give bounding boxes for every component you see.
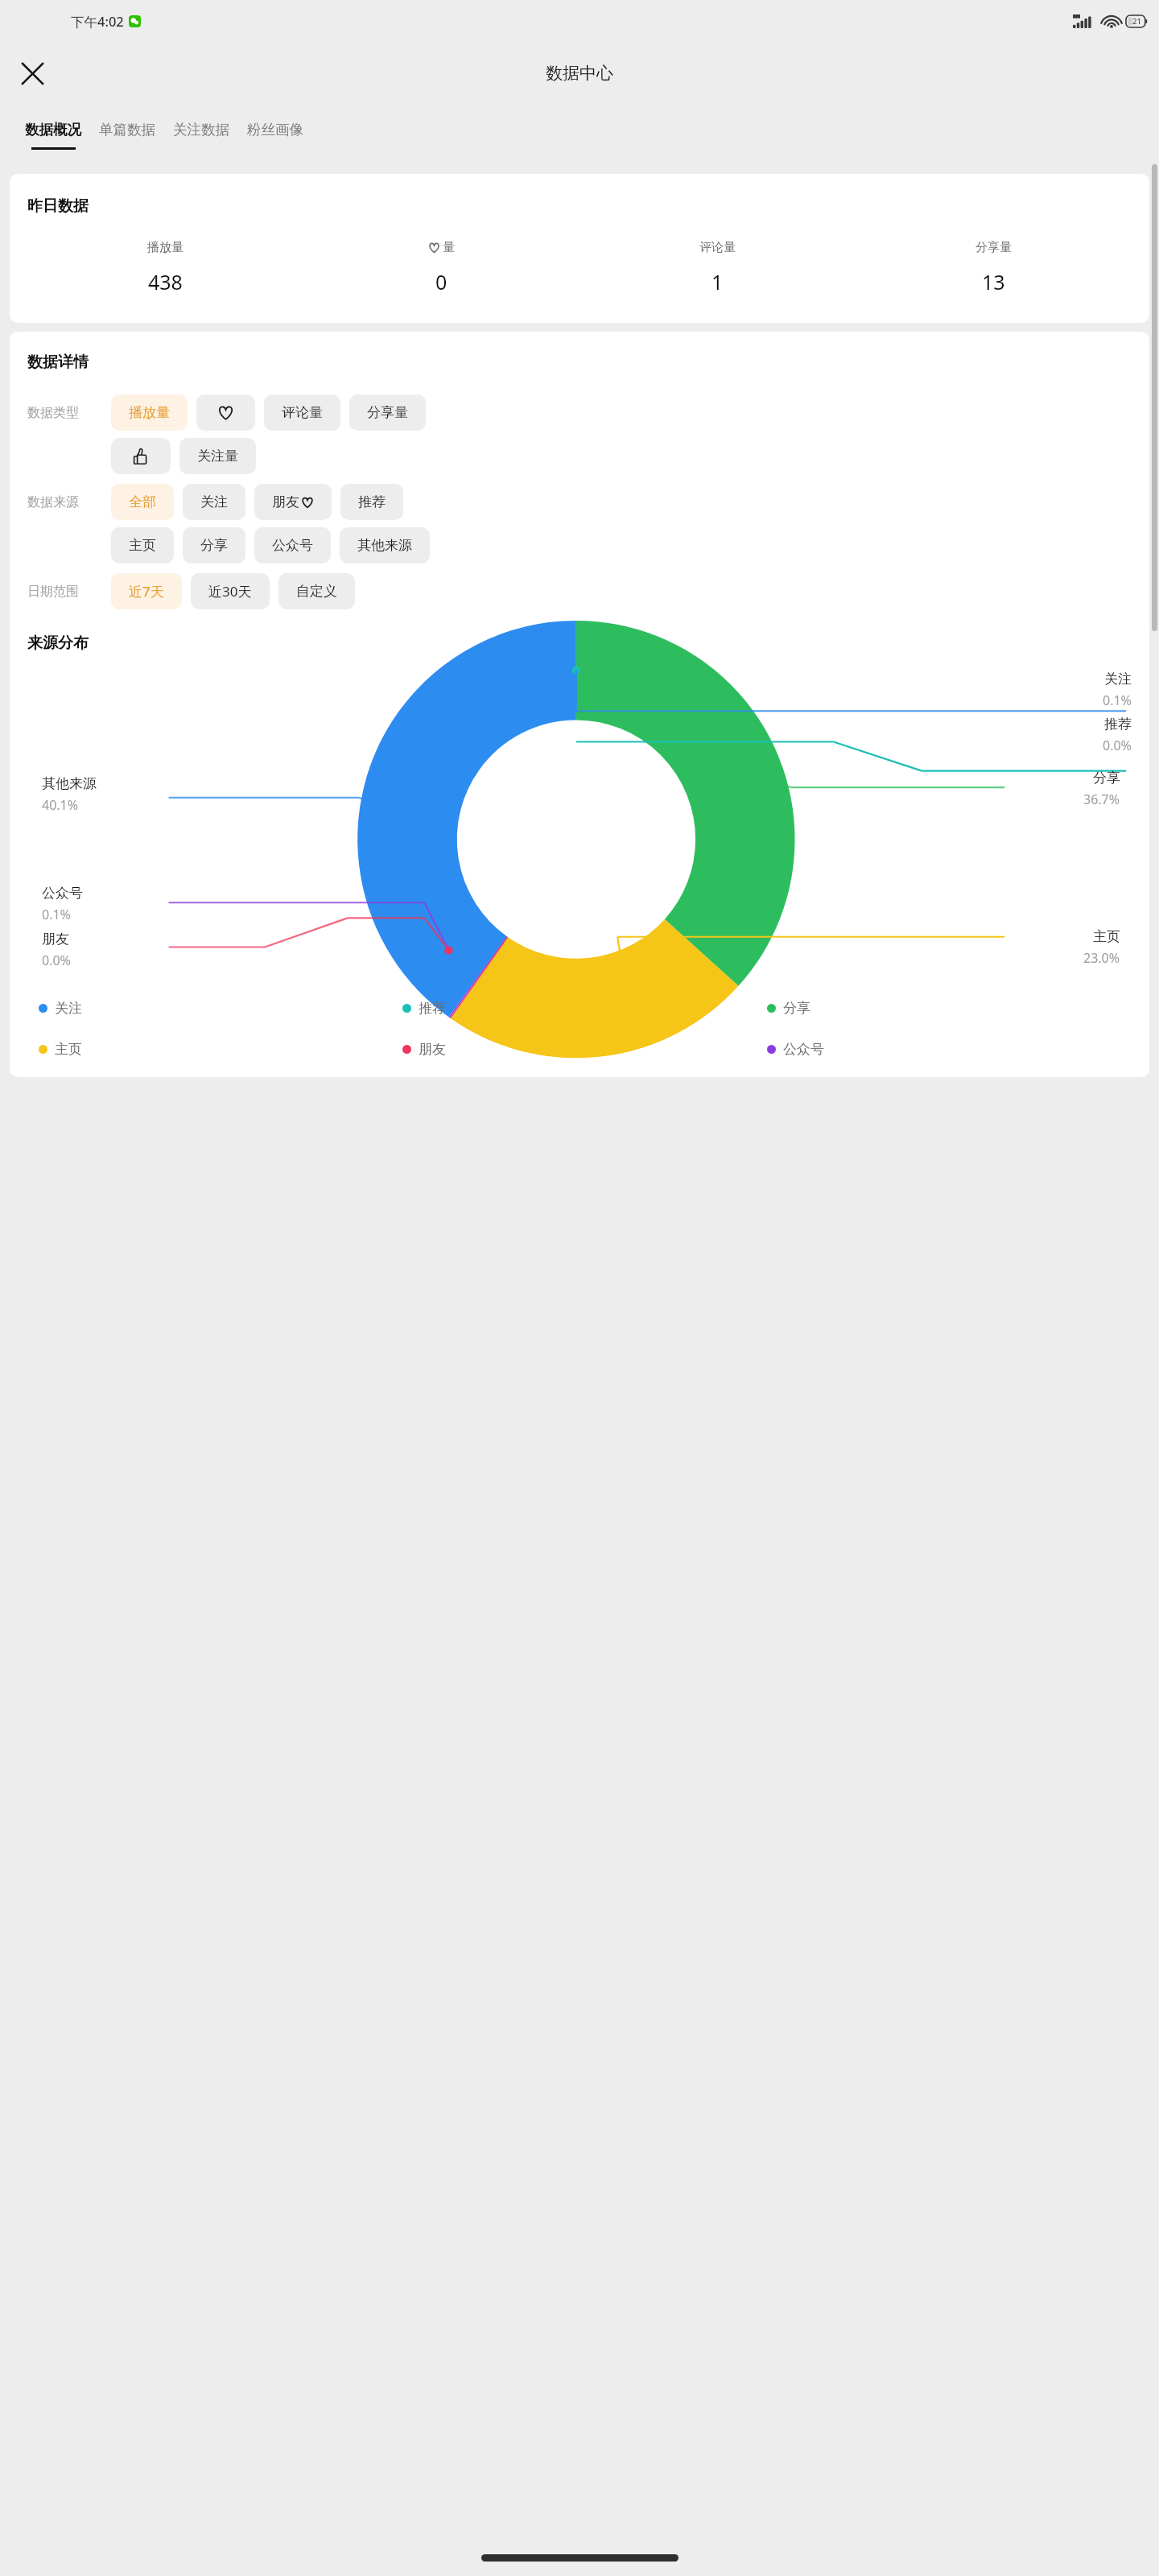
staticText: 近30天 bbox=[208, 582, 252, 601]
button[interactable]: 分享 bbox=[183, 527, 245, 563]
button[interactable] bbox=[196, 394, 255, 431]
staticText: 数据来源 bbox=[27, 494, 79, 510]
staticText: 分享 bbox=[783, 1000, 810, 1017]
staticText: 主页 bbox=[55, 1041, 82, 1058]
staticText: 其他来源 bbox=[42, 775, 97, 792]
button[interactable]: 近7天 bbox=[111, 573, 182, 609]
staticText: 自定义 bbox=[296, 583, 337, 600]
staticText: 1 bbox=[711, 268, 724, 295]
staticText: 分享量 bbox=[367, 404, 408, 421]
button[interactable]: 公众号 bbox=[254, 527, 331, 563]
staticText: 36.7% bbox=[1083, 791, 1120, 808]
staticText: 关注 bbox=[200, 493, 228, 510]
button[interactable]: Close bbox=[11, 52, 53, 94]
button[interactable]: 分享量 bbox=[349, 394, 426, 431]
staticText: 下午4:02 bbox=[71, 12, 124, 31]
staticText: 昨日数据 bbox=[27, 196, 89, 216]
staticText: 分享 bbox=[1093, 770, 1120, 786]
staticText: 播放量 bbox=[147, 240, 184, 255]
staticText: 关注量 bbox=[197, 448, 238, 464]
button[interactable]: 单篇数据 bbox=[90, 105, 164, 163]
staticText: 0.1% bbox=[1103, 691, 1132, 709]
staticText: 评论量 bbox=[699, 240, 736, 255]
button[interactable]: 粉丝画像 bbox=[238, 105, 312, 163]
button[interactable]: 关注量 bbox=[179, 438, 256, 474]
button[interactable] bbox=[111, 438, 171, 474]
button[interactable]: 评论量 bbox=[264, 394, 340, 431]
staticText: 评论量 bbox=[282, 404, 323, 421]
staticText: 关注 bbox=[55, 1000, 82, 1017]
button[interactable]: 数据概况 bbox=[16, 105, 90, 163]
staticText: 分享量 bbox=[975, 240, 1012, 255]
staticText: 关注数据 bbox=[173, 121, 229, 138]
staticText: 数据中心 bbox=[546, 63, 613, 84]
button[interactable]: 朋友 bbox=[254, 484, 332, 520]
button[interactable]: 播放量 bbox=[111, 394, 188, 431]
staticText: 全部 bbox=[129, 493, 156, 510]
staticText: 数据概况 bbox=[25, 121, 81, 138]
staticText: 0.0% bbox=[1103, 737, 1132, 754]
button[interactable]: 关注 bbox=[183, 484, 245, 520]
staticText: 推荐 bbox=[358, 493, 386, 510]
staticText: 公众号 bbox=[42, 885, 83, 902]
staticText: 推荐 bbox=[419, 1000, 446, 1017]
staticText: 分享 bbox=[200, 537, 228, 554]
staticText: 23.0% bbox=[1083, 949, 1120, 967]
staticText: 主页 bbox=[1093, 928, 1120, 945]
staticText: 21 bbox=[1132, 16, 1141, 27]
staticText: 公众号 bbox=[272, 537, 313, 554]
staticText: 其他来源 bbox=[357, 537, 412, 554]
staticText: 近7天 bbox=[129, 582, 164, 601]
staticText: 朋友 bbox=[42, 931, 69, 947]
button[interactable]: 其他来源 bbox=[340, 527, 430, 563]
staticText: 单篇数据 bbox=[99, 121, 155, 138]
button[interactable]: 推荐 bbox=[340, 484, 403, 520]
staticText: 朋友 bbox=[272, 493, 299, 510]
button[interactable]: 近30天 bbox=[191, 573, 270, 609]
staticText: 0 bbox=[435, 268, 448, 295]
staticText: 关注 bbox=[1104, 671, 1132, 687]
staticText: 13 bbox=[982, 268, 1005, 295]
button[interactable]: 主页 bbox=[111, 527, 174, 563]
staticText: 公众号 bbox=[783, 1041, 824, 1058]
staticText: 粉丝画像 bbox=[247, 121, 303, 138]
staticText: 推荐 bbox=[1104, 716, 1132, 733]
button[interactable]: 自定义 bbox=[278, 573, 355, 609]
staticText: 40.1% bbox=[42, 796, 79, 814]
staticText: 数据类型 bbox=[27, 405, 79, 421]
staticText: 数据详情 bbox=[27, 353, 89, 372]
staticText: 来源分布 bbox=[27, 634, 89, 653]
staticText: 量 bbox=[443, 240, 455, 255]
button[interactable]: 全部 bbox=[111, 484, 174, 520]
staticText: 朋友 bbox=[419, 1041, 446, 1058]
staticText: 主页 bbox=[129, 537, 156, 554]
staticText: 0.0% bbox=[42, 952, 71, 969]
staticText: 438 bbox=[148, 268, 183, 295]
button[interactable]: 关注数据 bbox=[164, 105, 238, 163]
staticText: 播放量 bbox=[129, 404, 170, 421]
staticText: 0.1% bbox=[42, 906, 71, 923]
staticText: 日期范围 bbox=[27, 584, 79, 600]
